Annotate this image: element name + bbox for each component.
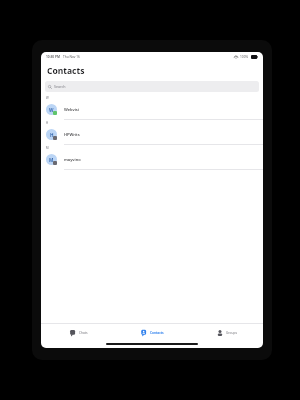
staticText: W [49, 107, 54, 113]
staticText: H [50, 132, 54, 138]
staticText: M [46, 146, 49, 150]
staticText: 10:30 PM [46, 55, 60, 59]
staticText: Webvisi [64, 107, 79, 112]
staticText: Contacts [150, 331, 164, 335]
staticText: Chats [79, 331, 88, 335]
button[interactable]: Chats [41, 324, 115, 341]
button[interactable]: M [41, 150, 263, 169]
button[interactable]: W [41, 100, 263, 119]
staticText: H [46, 121, 49, 125]
staticText: Contacts [47, 65, 85, 77]
staticText: W [46, 96, 49, 100]
staticText: Groups [226, 331, 237, 335]
staticText: HPWrits [64, 132, 80, 137]
staticText: 100% [240, 55, 249, 59]
button[interactable]: Groups [189, 324, 263, 341]
button[interactable]: Contacts [115, 324, 189, 341]
staticText: mayvino [64, 157, 81, 162]
staticText: Search [54, 84, 66, 89]
button[interactable]: Search [45, 81, 259, 92]
staticText: M [49, 157, 54, 163]
button[interactable]: H [41, 125, 263, 144]
staticText: Thu Nov 16 [63, 55, 80, 59]
